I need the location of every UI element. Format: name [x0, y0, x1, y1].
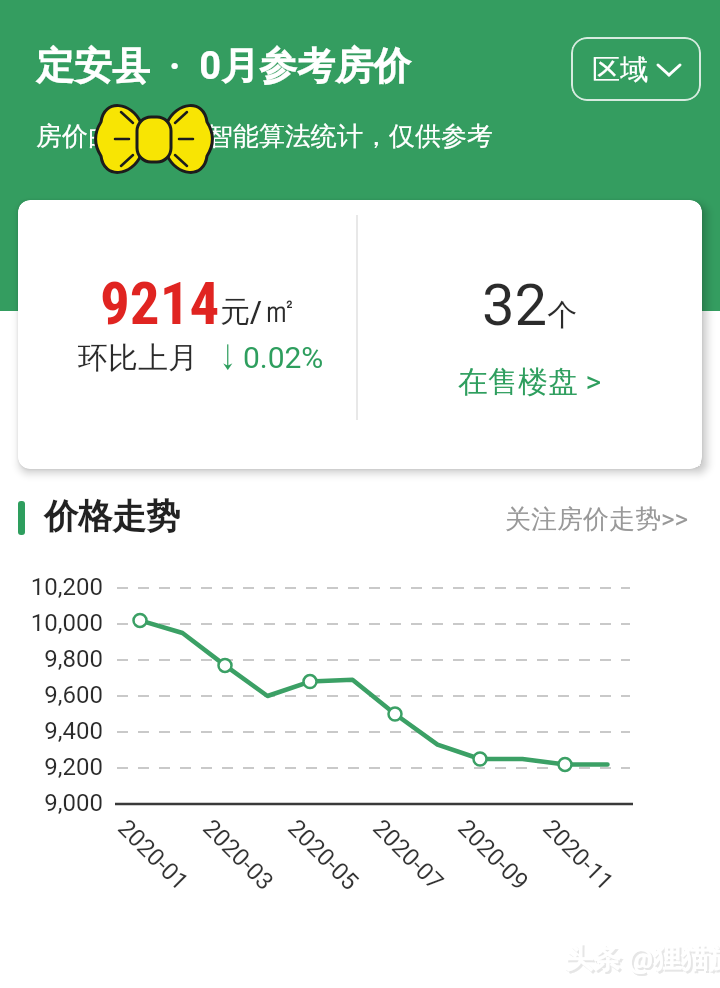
staticText: 9,000	[0, 789, 103, 817]
staticText: 环比上月 ↓0.02%	[78, 339, 324, 377]
staticText: 元/㎡	[220, 287, 298, 332]
staticText: 9214	[100, 269, 220, 338]
button[interactable]: 在售楼盘 >	[458, 363, 602, 401]
staticText: 9,400	[0, 717, 103, 745]
button[interactable]: 关注房价走势>>	[505, 503, 689, 536]
staticText: 9,600	[0, 681, 103, 709]
staticText: 智能算法统计，仅供参考	[207, 120, 493, 153]
staticText: 价格走势	[44, 495, 180, 538]
staticText: 10,200	[0, 573, 103, 601]
staticText: 9,800	[0, 645, 103, 673]
staticText: 在售楼盘 >	[458, 363, 602, 401]
staticText: 10,000	[0, 609, 103, 637]
staticText: 9,200	[0, 753, 103, 781]
staticText: 2020-01	[112, 814, 194, 896]
staticText: 房价由	[36, 120, 114, 153]
staticText: 2020-11	[537, 814, 619, 896]
staticText: 2020-03	[197, 814, 279, 896]
staticText: 定安县 · 0月参考房价	[36, 42, 412, 90]
staticText: 32个	[482, 271, 578, 339]
staticText: 2020-05	[282, 814, 364, 896]
staticText: 头条 @狸猫旅行	[567, 943, 720, 978]
staticText: 区域	[592, 52, 648, 87]
staticText: 头条 @狸猫旅行	[565, 941, 720, 976]
button[interactable]: 区域	[571, 37, 701, 101]
staticText: 2020-09	[452, 814, 534, 896]
staticText: 2020-07	[367, 814, 449, 896]
staticText: 关注房价走势>>	[505, 503, 689, 536]
